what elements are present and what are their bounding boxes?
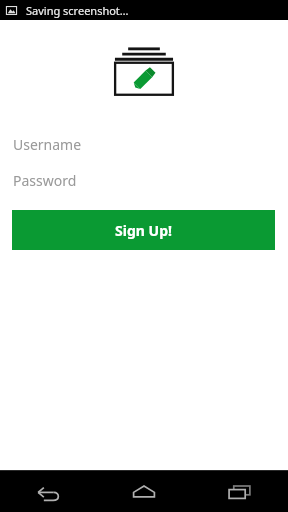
button[interactable]: Back	[0, 471, 96, 512]
staticText: Saving screenshot…	[26, 3, 129, 18]
button[interactable]: Password	[0, 162, 288, 198]
staticText: Password	[13, 171, 77, 190]
button[interactable]: Username	[0, 126, 288, 162]
staticText: Username	[13, 135, 82, 154]
button[interactable]: Recent apps	[192, 471, 288, 512]
button[interactable]: Sign Up!	[12, 210, 275, 250]
staticText: Sign Up!	[115, 221, 172, 240]
button[interactable]: Home	[96, 471, 192, 512]
